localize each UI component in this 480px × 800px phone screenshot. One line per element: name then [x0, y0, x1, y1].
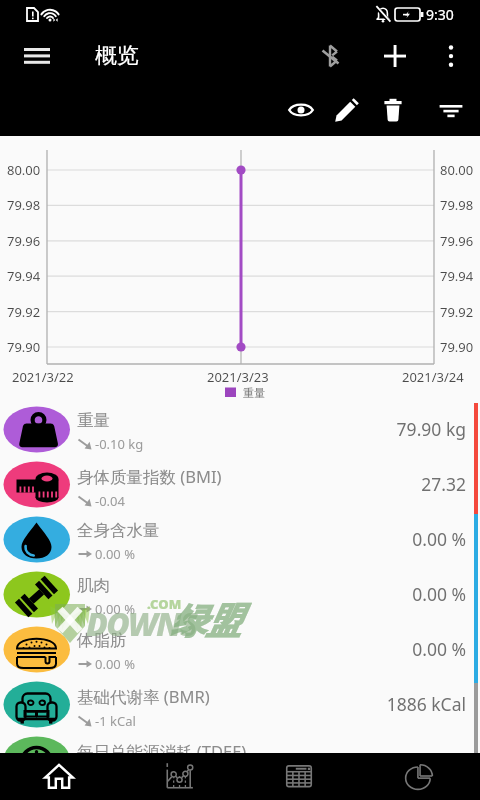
staticText: 0.00 % — [412, 582, 466, 606]
staticText: 9:30 — [426, 5, 454, 24]
staticText: 79.96 — [7, 232, 41, 250]
staticText: 绿盟 — [171, 599, 241, 643]
staticText: 肌肉 — [77, 575, 110, 596]
staticText: 基础代谢率 (BMR) — [77, 685, 210, 708]
staticText: 全身含水量 — [77, 520, 160, 541]
button[interactable]: Delete — [369, 86, 417, 134]
staticText: 0.00 % — [412, 527, 466, 551]
button[interactable]: 肌肉 — [0, 565, 480, 620]
staticText: 0.00 % — [95, 545, 135, 563]
button[interactable]: 体脂肪 — [0, 620, 480, 675]
button[interactable]: Edit — [323, 86, 371, 134]
button[interactable]: More options — [427, 32, 475, 80]
staticText: 79.92 — [7, 303, 41, 321]
staticText: 80.00 — [7, 161, 41, 179]
button[interactable]: Home — [0, 753, 120, 800]
staticText: 2021/3/22 — [12, 368, 74, 386]
staticText: 重量 — [243, 386, 265, 400]
button[interactable]: Table — [240, 753, 360, 800]
staticText: 79.94 — [7, 267, 41, 285]
staticText: -0.10 kg — [95, 435, 144, 453]
button[interactable]: 重量 — [0, 400, 480, 455]
button[interactable]: Add — [371, 32, 419, 80]
staticText: 0.00 % — [95, 600, 135, 618]
staticText: 79.98 — [440, 196, 474, 214]
staticText: 79.90 — [440, 338, 474, 356]
staticText: 79.94 — [440, 267, 474, 285]
button[interactable]: Navigation menu — [13, 32, 61, 80]
staticText: 每日总能源消耗 (TDEE) — [77, 740, 247, 763]
staticText: 身体质量指数 (BMI) — [77, 465, 222, 488]
staticText: DOWNS — [86, 602, 196, 646]
staticText: 79.90 kg — [396, 417, 466, 441]
staticText: 27.32 — [421, 472, 466, 496]
staticText: 概览 — [95, 42, 139, 70]
staticText: 2021/3/24 — [402, 368, 464, 386]
staticText: 79.90 — [7, 338, 41, 356]
button[interactable]: 身体质量指数 (BMI) — [0, 455, 480, 510]
staticText: 体脂肪 — [77, 630, 127, 651]
staticText: 1886 kCal — [386, 692, 466, 716]
button[interactable]: Charts — [120, 753, 240, 800]
staticText: 79.92 — [440, 303, 474, 321]
staticText: 0.00 % — [95, 655, 135, 673]
staticText: -0.04 — [95, 492, 125, 510]
staticText: 2021/3/23 — [207, 368, 269, 386]
button[interactable]: 基础代谢率 (BMR) — [0, 675, 480, 730]
staticText: -1 kCal — [95, 712, 136, 730]
button[interactable]: Bluetooth disabled — [306, 32, 354, 80]
staticText: 80.00 — [440, 161, 474, 179]
staticText: .COM — [147, 595, 182, 613]
staticText: 79.96 — [440, 232, 474, 250]
button[interactable]: Filter — [427, 86, 475, 134]
button[interactable]: 全身含水量 — [0, 510, 480, 565]
staticText: 0.00 % — [412, 637, 466, 661]
staticText: 79.98 — [7, 196, 41, 214]
button[interactable]: 每日总能源消耗 (TDEE) — [0, 730, 480, 753]
button[interactable]: Show — [277, 86, 325, 134]
button[interactable]: Statistics — [360, 753, 480, 800]
staticText: 重量 — [77, 410, 110, 431]
